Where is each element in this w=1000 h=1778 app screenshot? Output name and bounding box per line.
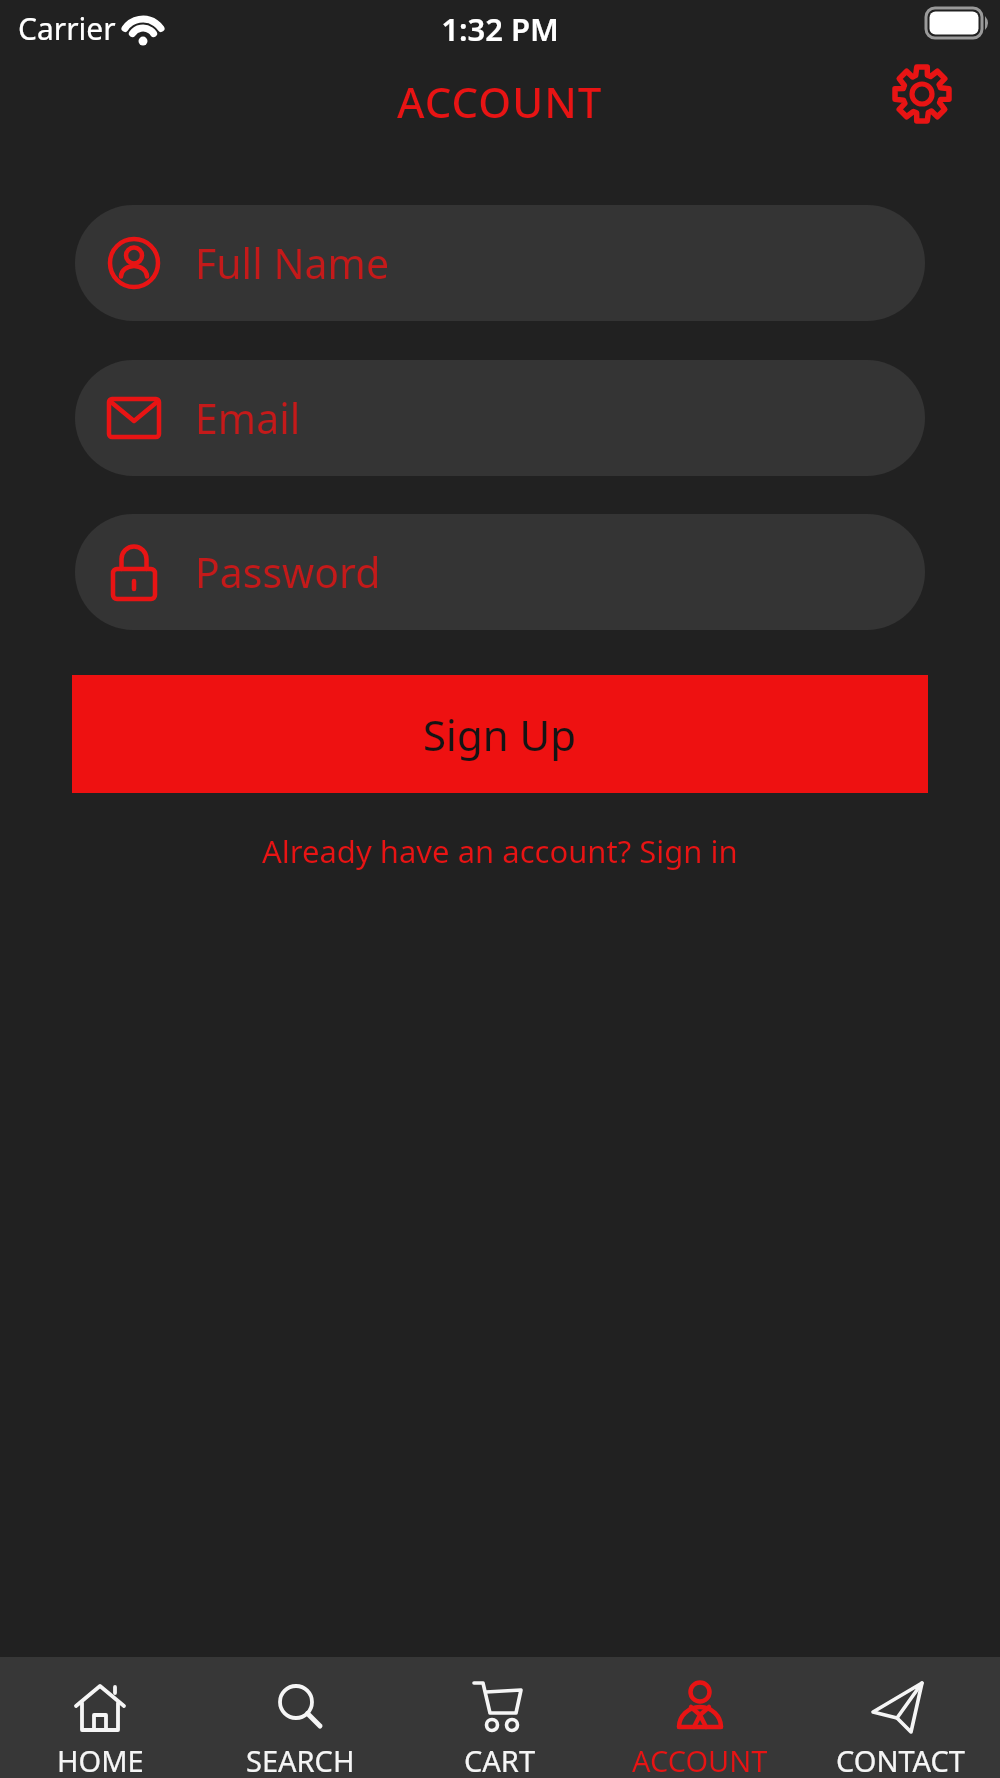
staticText: ACCOUNT (397, 73, 603, 130)
staticText: Full Name (195, 235, 390, 291)
staticText: Carrier (18, 8, 116, 49)
staticText: SEARCH (246, 1741, 355, 1778)
staticText: Email (195, 390, 301, 446)
staticText: CONTACT (836, 1741, 965, 1778)
button[interactable]: Password (75, 514, 925, 630)
staticText: Already have an account? Sign in (262, 830, 738, 872)
staticText: CART (464, 1741, 536, 1778)
button[interactable]: SEARCH (200, 1657, 400, 1778)
staticText: Password (195, 544, 381, 600)
button[interactable]: Full Name (75, 205, 925, 321)
button[interactable]: Email (75, 360, 925, 476)
button[interactable] (890, 62, 954, 126)
button[interactable]: ACCOUNT (600, 1657, 800, 1778)
button[interactable]: Already have an account? Sign in (0, 828, 1000, 874)
button[interactable]: CART (400, 1657, 600, 1778)
staticText: ACCOUNT (632, 1741, 768, 1778)
button[interactable]: HOME (0, 1657, 200, 1778)
button[interactable]: CONTACT (800, 1657, 1000, 1778)
staticText: Sign Up (423, 706, 577, 763)
staticText: 1:32 PM (0, 8, 1000, 50)
staticText: HOME (57, 1741, 144, 1778)
button[interactable]: Sign Up (72, 675, 928, 793)
